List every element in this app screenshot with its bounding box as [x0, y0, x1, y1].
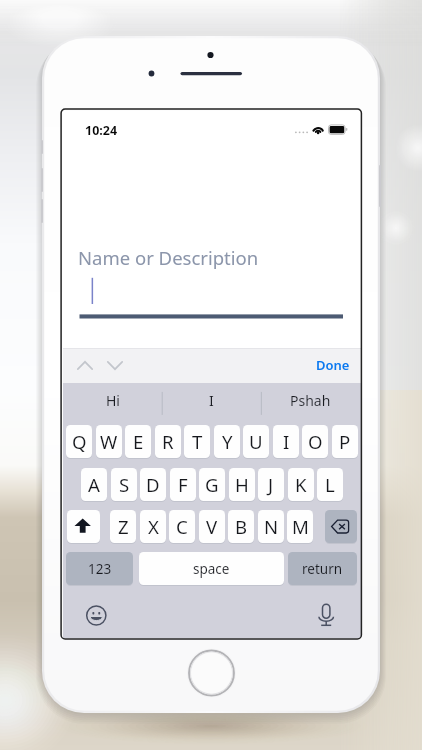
button[interactable]: Y: [214, 425, 240, 458]
button[interactable]: I: [273, 425, 299, 458]
button[interactable]: Pshah: [261, 383, 360, 418]
button[interactable]: S: [111, 468, 137, 501]
staticText: Done: [316, 356, 350, 374]
staticText: Z: [118, 514, 129, 539]
staticText: L: [325, 472, 335, 497]
staticText: N: [264, 514, 279, 539]
staticText: M: [292, 514, 309, 539]
staticText: X: [148, 514, 159, 539]
button[interactable]: Q: [66, 425, 92, 458]
button[interactable]: T: [184, 425, 210, 458]
staticText: space: [193, 560, 230, 578]
button[interactable]: I: [162, 383, 261, 418]
button[interactable]: M: [287, 510, 313, 543]
button[interactable]: F: [170, 468, 196, 501]
staticText: 10:24: [85, 122, 118, 139]
button[interactable]: O: [302, 425, 328, 458]
button[interactable]: Z: [110, 510, 136, 543]
staticText: K: [295, 472, 307, 497]
staticText: A: [88, 472, 100, 497]
staticText: I: [209, 391, 214, 410]
button[interactable]: B: [228, 510, 254, 543]
button[interactable]: Backspace: [325, 510, 357, 543]
button[interactable]: K: [288, 468, 314, 501]
staticText: C: [176, 514, 188, 539]
button[interactable]: N: [258, 510, 284, 543]
button[interactable]: R: [155, 425, 181, 458]
button[interactable]: V: [199, 510, 225, 543]
button[interactable]: J: [258, 468, 284, 501]
staticText: E: [133, 429, 144, 454]
button[interactable]: Hi: [63, 383, 162, 418]
staticText: I: [283, 429, 290, 454]
button[interactable]: E: [125, 425, 151, 458]
staticText: Y: [222, 429, 233, 454]
staticText: W: [100, 429, 118, 454]
button[interactable]: P: [332, 425, 358, 458]
staticText: G: [205, 472, 219, 497]
button[interactable]: U: [243, 425, 269, 458]
staticText: U: [249, 429, 263, 454]
staticText: F: [178, 472, 188, 497]
button[interactable]: H: [229, 468, 255, 501]
staticText: T: [192, 429, 203, 454]
staticText: O: [308, 429, 323, 454]
button[interactable]: W: [96, 425, 122, 458]
button[interactable]: Previous: [73, 353, 97, 378]
button[interactable]: C: [169, 510, 195, 543]
button[interactable]: 123: [66, 552, 133, 585]
staticText: V: [206, 514, 218, 539]
staticText: Name or Description: [78, 245, 259, 270]
staticText: Pshah: [290, 391, 331, 410]
button[interactable]: L: [317, 468, 343, 501]
button[interactable]: return: [288, 552, 357, 585]
staticText: 123: [88, 560, 112, 578]
button[interactable]: space: [139, 552, 284, 585]
button[interactable]: X: [140, 510, 166, 543]
staticText: return: [302, 560, 343, 578]
button[interactable]: Shift: [67, 510, 100, 543]
button[interactable]: G: [199, 468, 225, 501]
staticText: S: [119, 472, 130, 497]
staticText: B: [235, 514, 248, 539]
staticText: P: [339, 429, 351, 454]
button[interactable]: Next: [103, 353, 127, 378]
staticText: D: [146, 472, 160, 497]
button[interactable]: Dictation: [314, 604, 338, 628]
button[interactable]: A: [81, 468, 107, 501]
staticText: Hi: [106, 391, 120, 410]
staticText: H: [235, 472, 249, 497]
button[interactable]: D: [140, 468, 166, 501]
staticText: J: [268, 472, 274, 497]
staticText: Q: [72, 429, 87, 454]
button[interactable]: Emoji: [84, 604, 108, 628]
staticText: R: [162, 429, 174, 454]
button[interactable]: Done: [312, 352, 354, 378]
